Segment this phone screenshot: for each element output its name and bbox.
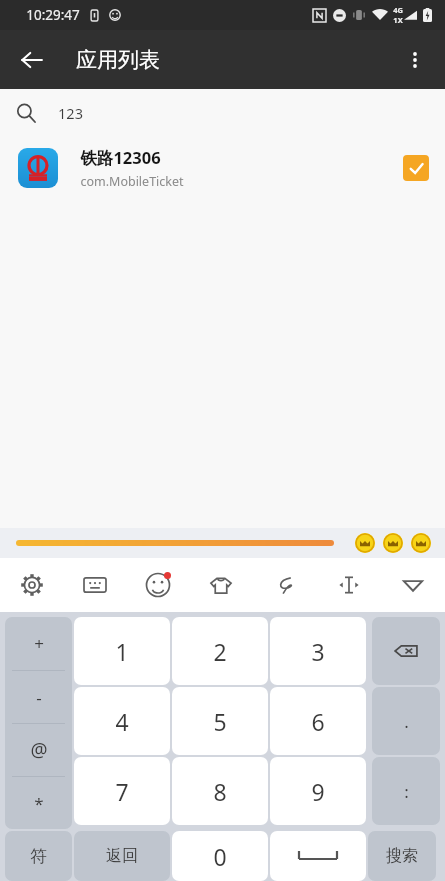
staticText: * [34, 792, 44, 815]
staticText: 10:29:47 [26, 6, 80, 24]
button[interactable]: Handwriting [253, 558, 317, 612]
staticText: 9 [311, 776, 325, 807]
staticText: - [36, 686, 42, 709]
staticText: 3 [311, 636, 325, 667]
button[interactable]: 9 [270, 757, 366, 825]
button[interactable]: Selected [403, 155, 429, 181]
button[interactable]: 7 [74, 757, 170, 825]
staticText: + [34, 632, 44, 655]
button[interactable]: - [5, 671, 72, 723]
staticText: 应用列表 [76, 47, 160, 73]
button[interactable]: + [5, 617, 72, 670]
button[interactable]: Emoji [126, 558, 189, 612]
button[interactable]: Edit [317, 558, 381, 612]
button[interactable]: 搜索 [368, 831, 436, 881]
staticText: 4 [115, 706, 129, 737]
button[interactable]: More options [393, 38, 437, 82]
staticText: 5 [213, 706, 227, 737]
button[interactable]: 6 [270, 687, 366, 755]
button[interactable]: Hide keyboard [381, 558, 445, 612]
staticText: 8 [213, 776, 227, 807]
staticText: 2 [213, 636, 227, 667]
button[interactable]: 0 [172, 831, 268, 881]
staticText: 铁路12306 [80, 146, 161, 169]
button[interactable]: @ [5, 724, 72, 776]
button[interactable]: Keyboard [63, 558, 126, 612]
staticText: : [404, 780, 409, 803]
button[interactable]: Backspace [372, 617, 440, 685]
button[interactable]: 5 [172, 687, 268, 755]
button[interactable]: 1 [74, 617, 170, 685]
staticText: @ [30, 737, 48, 763]
staticText: 4G [393, 5, 403, 15]
staticText: 1 [115, 636, 129, 667]
staticText: . [404, 710, 409, 733]
staticText: 搜索 [386, 846, 418, 866]
staticText: 7 [115, 776, 129, 807]
button[interactable]: Back [10, 38, 54, 82]
staticText: 0 [213, 841, 227, 872]
button[interactable]: Theme [189, 558, 253, 612]
staticText: 1X [393, 15, 403, 25]
staticText: 符 [30, 846, 47, 867]
button[interactable]: 符 [5, 831, 72, 881]
button[interactable]: : [372, 757, 440, 825]
button[interactable]: Space [270, 831, 366, 881]
button[interactable]: 铁路12306 [0, 137, 445, 199]
button[interactable]: . [372, 687, 440, 755]
staticText: 123 [58, 103, 83, 123]
staticText: 返回 [106, 846, 138, 866]
button[interactable]: 4 [74, 687, 170, 755]
button[interactable]: * [5, 777, 72, 829]
staticText: 6 [311, 706, 325, 737]
button[interactable]: 8 [172, 757, 268, 825]
button[interactable]: Settings [0, 558, 63, 612]
button[interactable]: 3 [270, 617, 366, 685]
button[interactable]: 2 [172, 617, 268, 685]
button[interactable]: 返回 [74, 831, 170, 881]
staticText: com.MobileTicket [80, 173, 184, 190]
button[interactable]: 123 [0, 89, 445, 137]
